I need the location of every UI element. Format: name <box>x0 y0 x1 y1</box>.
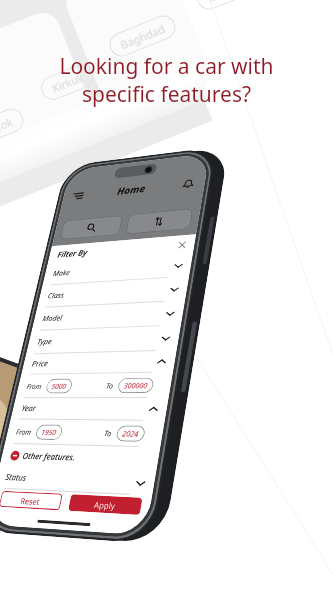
staticText: Looking for a car with specific features… <box>59 52 274 108</box>
button[interactable]: Other features. <box>8 444 151 471</box>
staticText: Baghdad <box>118 21 167 52</box>
staticText: To <box>103 428 113 438</box>
button[interactable]: Class <box>45 277 181 308</box>
button[interactable]: Reset <box>0 491 63 510</box>
button[interactable]: Model <box>40 301 176 331</box>
staticText: Model <box>41 313 64 324</box>
button[interactable]: Close <box>177 241 187 249</box>
staticText: Status <box>4 471 28 484</box>
staticText: Reset <box>19 495 41 507</box>
staticText: Kirkuk <box>50 69 86 96</box>
staticText: Class <box>47 290 66 301</box>
staticText: 300000 <box>123 380 148 390</box>
button[interactable]: Search <box>59 215 123 240</box>
button[interactable]: Make <box>50 254 185 285</box>
button[interactable]: Notifications <box>180 176 197 191</box>
button[interactable]: Price <box>30 351 168 374</box>
staticText: 5000 <box>51 381 68 391</box>
staticText: To <box>105 381 114 390</box>
button[interactable]: Apply <box>68 494 143 515</box>
staticText: From <box>26 382 43 391</box>
button[interactable]: Menu <box>70 188 86 203</box>
staticText: 1950 <box>40 427 58 437</box>
button[interactable]: 300000 <box>122 378 149 393</box>
button[interactable]: Sort <box>125 208 193 234</box>
staticText: Year <box>20 403 38 414</box>
staticText: Price <box>31 358 49 369</box>
staticText: Home <box>116 182 147 197</box>
staticText: Other features. <box>21 450 77 463</box>
button[interactable]: 5000 <box>50 379 68 393</box>
staticText: hok <box>0 114 15 135</box>
button[interactable]: Status <box>3 466 147 496</box>
staticText: Apply <box>93 498 117 511</box>
button[interactable]: 1950 <box>40 424 58 440</box>
staticText: Type <box>36 336 53 347</box>
button[interactable]: 2024 <box>121 425 140 442</box>
button[interactable]: Year <box>19 398 160 421</box>
button[interactable]: Type <box>34 326 172 354</box>
staticText: 2024 <box>121 428 140 439</box>
staticText: Mosul <box>205 0 241 5</box>
staticText: Make <box>52 268 72 279</box>
staticText: Filter By <box>56 247 88 260</box>
staticText: From <box>15 427 33 437</box>
